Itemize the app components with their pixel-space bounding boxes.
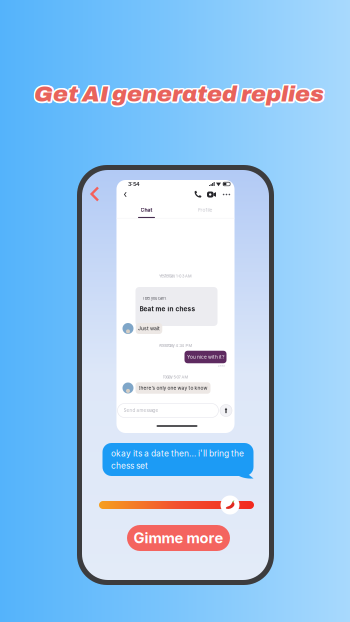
button[interactable]: Record voice message bbox=[220, 404, 232, 416]
staticText: Get AI generated replies bbox=[35, 80, 325, 105]
staticText: Send a message bbox=[123, 408, 158, 413]
button[interactable]: Back bbox=[121, 189, 130, 199]
staticText: Gimme more bbox=[133, 529, 223, 547]
staticText: Get AI generated replies bbox=[34, 80, 324, 105]
staticText: there's only one way to know bbox=[138, 385, 207, 391]
staticText: Get AI generated replies bbox=[33, 83, 323, 108]
staticText: 3:54 bbox=[128, 181, 140, 187]
button[interactable]: Video call bbox=[206, 189, 217, 200]
staticText: Get AI generated replies bbox=[36, 82, 326, 106]
staticText: seen bbox=[217, 364, 225, 368]
staticText: Get AI generated replies bbox=[34, 83, 324, 108]
staticText: You nice with it? bbox=[187, 354, 224, 360]
staticText: I bet you can't bbox=[143, 296, 166, 301]
staticText: Get AI generated replies bbox=[34, 82, 324, 106]
staticText: okay its a date then… i'll bring the bbox=[111, 448, 244, 458]
staticText: Just wait bbox=[138, 325, 160, 331]
staticText: Yesterday 1:03 AM bbox=[159, 274, 192, 278]
staticText: Profile bbox=[197, 207, 212, 213]
staticText: Today 5:07 AM bbox=[162, 375, 188, 379]
button[interactable]: Spice level bbox=[220, 495, 239, 514]
staticText: Chat bbox=[140, 207, 152, 213]
staticText: Yesterday 4:34 PM bbox=[158, 343, 192, 348]
staticText: Beat me in chess bbox=[139, 305, 195, 313]
button[interactable]: Back bbox=[88, 184, 102, 204]
button[interactable]: Chat bbox=[123, 203, 169, 217]
button[interactable]: Profile bbox=[182, 203, 228, 217]
staticText: Get AI generated replies bbox=[35, 83, 325, 108]
button[interactable]: More bbox=[221, 189, 232, 200]
button[interactable]: Gimme more bbox=[127, 525, 230, 551]
staticText: Get AI generated replies bbox=[33, 80, 323, 105]
staticText: Get AI generated replies bbox=[32, 82, 322, 106]
button[interactable]: Call bbox=[192, 189, 203, 200]
staticText: chess set bbox=[111, 460, 148, 471]
